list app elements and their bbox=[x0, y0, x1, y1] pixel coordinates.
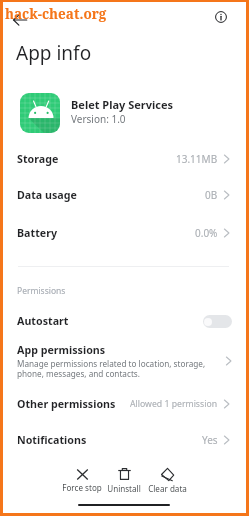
staticText: 13.11MB bbox=[176, 152, 218, 166]
staticText: Storage bbox=[17, 152, 59, 167]
staticText: Force stop bbox=[62, 482, 102, 493]
button[interactable]: Other permissions bbox=[3, 388, 246, 420]
button[interactable]: Data usage bbox=[3, 179, 246, 211]
button[interactable]: Autostart bbox=[3, 307, 246, 335]
staticText: Battery bbox=[17, 226, 58, 241]
button[interactable]: App permissions bbox=[3, 339, 246, 383]
staticText: Uninstall bbox=[107, 483, 141, 494]
button[interactable]: Storage bbox=[3, 143, 246, 175]
staticText: Data usage bbox=[17, 188, 77, 203]
staticText: Autostart bbox=[17, 314, 69, 329]
button[interactable]: Force stop bbox=[62, 469, 102, 493]
staticText: App permissions bbox=[17, 343, 106, 358]
staticText: Other permissions bbox=[17, 397, 116, 412]
staticText: App info bbox=[16, 40, 92, 66]
staticText: hack-cheat.org bbox=[5, 5, 107, 23]
staticText: 0.0% bbox=[195, 226, 218, 240]
staticText: Version: 1.0 bbox=[71, 112, 126, 126]
staticText: Yes bbox=[202, 433, 218, 447]
button[interactable]: Notifications bbox=[3, 424, 246, 456]
staticText: Manage permissions related to location, … bbox=[17, 358, 206, 380]
button[interactable]: Battery bbox=[3, 217, 246, 249]
button[interactable]: Info bbox=[209, 5, 233, 29]
staticText: Allowed 1 permission bbox=[130, 398, 218, 410]
button[interactable]: Back bbox=[8, 8, 32, 32]
staticText: Permissions bbox=[17, 285, 66, 297]
button[interactable]: Uninstall bbox=[104, 468, 144, 494]
button[interactable]: Clear data bbox=[147, 468, 187, 494]
staticText: Clear data bbox=[148, 483, 187, 494]
staticText: Belet Play Services bbox=[71, 97, 174, 112]
staticText: Notifications bbox=[17, 433, 87, 448]
staticText: 0B bbox=[205, 188, 218, 202]
